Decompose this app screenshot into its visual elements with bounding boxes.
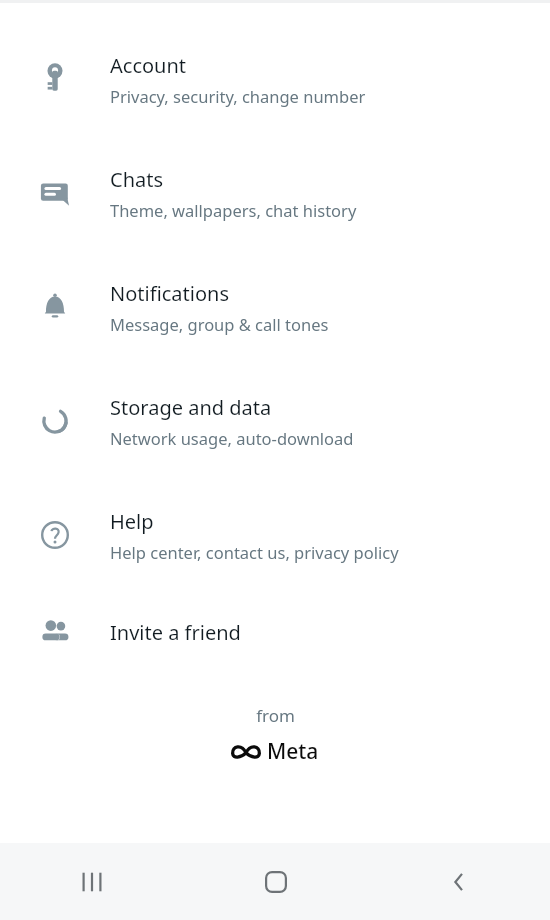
staticText: from xyxy=(256,704,295,727)
staticText: Storage and data xyxy=(110,394,272,421)
staticText: Chats xyxy=(110,166,164,193)
staticText: Message, group & call tones xyxy=(110,313,329,335)
button[interactable]: Recent apps xyxy=(0,843,184,920)
staticText: Notifications xyxy=(110,280,229,307)
button[interactable]: Chats xyxy=(0,136,550,250)
staticText: Help xyxy=(110,508,154,535)
staticText: Network usage, auto-download xyxy=(110,427,354,449)
button[interactable]: Invite a friend xyxy=(0,592,550,672)
button[interactable]: Account xyxy=(0,22,550,136)
staticText: Meta xyxy=(267,737,319,766)
staticText: Invite a friend xyxy=(110,619,241,646)
button[interactable]: Back xyxy=(367,843,550,920)
staticText: Privacy, security, change number xyxy=(110,85,366,107)
staticText: Help center, contact us, privacy policy xyxy=(110,541,399,563)
button[interactable]: Home xyxy=(184,843,367,920)
button[interactable]: Notifications xyxy=(0,250,550,364)
button[interactable]: Help xyxy=(0,478,550,592)
staticText: Theme, wallpapers, chat history xyxy=(110,199,357,221)
button[interactable]: Storage and data xyxy=(0,364,550,478)
staticText: Account xyxy=(110,52,187,79)
